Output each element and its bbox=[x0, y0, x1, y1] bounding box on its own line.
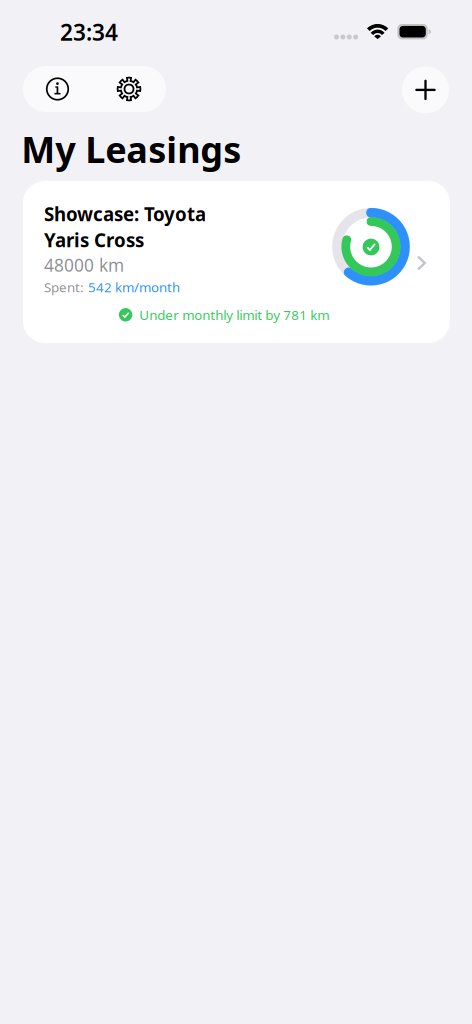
button[interactable]: Showcase: Toyota bbox=[23, 181, 450, 343]
staticText: 48000 km bbox=[44, 253, 124, 276]
staticText: 542 km/month bbox=[88, 278, 180, 296]
staticText: Yaris Cross bbox=[44, 228, 144, 252]
staticText: 23:34 bbox=[60, 17, 118, 47]
button[interactable]: Add leasing bbox=[402, 66, 449, 113]
button[interactable]: Settings bbox=[92, 66, 166, 112]
staticText: Showcase: Toyota bbox=[44, 202, 206, 226]
staticText: Under monthly limit by 781 km bbox=[139, 306, 329, 324]
button[interactable]: Information bbox=[23, 66, 92, 112]
staticText: Spent: bbox=[44, 278, 84, 296]
staticText: My Leasings bbox=[21, 125, 241, 173]
